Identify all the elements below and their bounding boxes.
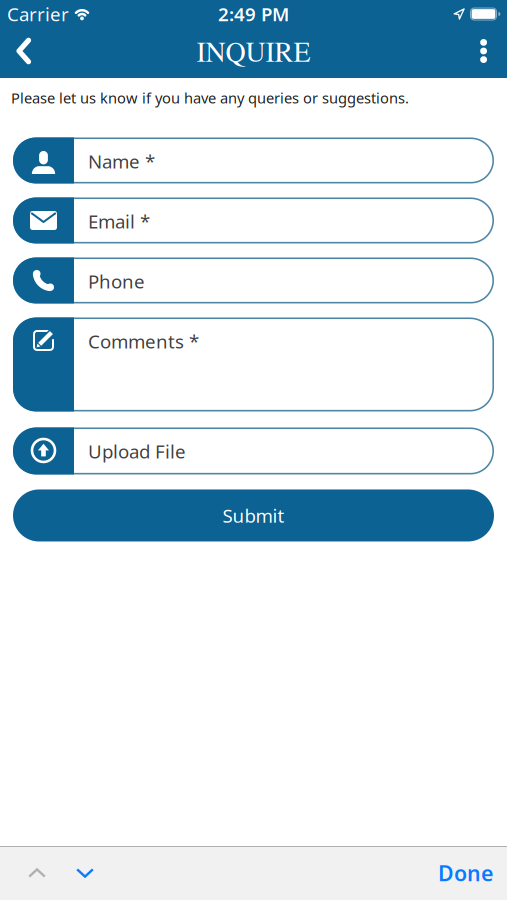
staticText: Done bbox=[438, 859, 493, 887]
staticText: Phone bbox=[88, 269, 145, 294]
button[interactable]: Email * bbox=[13, 197, 494, 243]
button[interactable]: Done bbox=[438, 859, 493, 887]
button[interactable] bbox=[480, 39, 507, 63]
staticText: Carrier bbox=[7, 2, 69, 26]
staticText: Name * bbox=[88, 149, 155, 174]
button[interactable]: Phone bbox=[13, 257, 494, 303]
button[interactable]: Submit bbox=[13, 489, 494, 541]
button[interactable]: Upload File bbox=[13, 427, 494, 474]
button[interactable] bbox=[28, 868, 46, 878]
staticText: Email * bbox=[88, 209, 150, 234]
button[interactable] bbox=[76, 868, 94, 878]
staticText: Comments * bbox=[88, 329, 199, 354]
staticText: Please let us know if you have any queri… bbox=[11, 88, 409, 107]
staticText: Submit bbox=[222, 503, 284, 528]
button[interactable]: Name * bbox=[13, 137, 494, 183]
staticText: Upload File bbox=[88, 439, 186, 464]
staticText: INQUIRE bbox=[196, 32, 310, 70]
button[interactable]: Comments * bbox=[13, 317, 494, 411]
button[interactable] bbox=[0, 37, 32, 64]
staticText: 2:49 PM bbox=[218, 2, 289, 26]
